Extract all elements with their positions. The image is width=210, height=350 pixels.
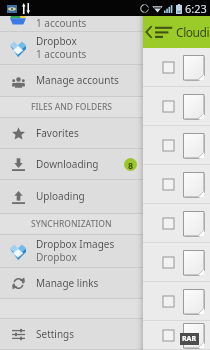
button[interactable]: Select item bbox=[0, 204, 210, 243]
staticText: Manage links bbox=[36, 276, 99, 290]
staticText: Dropbox Images bbox=[36, 237, 115, 251]
button[interactable]: Select item bbox=[0, 126, 210, 165]
button[interactable]: Manage accounts bbox=[0, 65, 143, 97]
staticText: RAR bbox=[182, 334, 197, 344]
button[interactable]: Select item bbox=[163, 296, 174, 307]
staticText: Manage accounts bbox=[36, 73, 119, 87]
button[interactable]: 1 accounts bbox=[0, 16, 143, 32]
button[interactable]: Downloading bbox=[0, 149, 143, 180]
button[interactable]: Select item bbox=[163, 257, 174, 268]
button[interactable]: Select item bbox=[0, 282, 210, 321]
staticText: Uploading bbox=[36, 189, 85, 203]
staticText: Settings bbox=[36, 327, 75, 341]
button[interactable]: Select item bbox=[0, 48, 210, 87]
button[interactable]: Dropbox Images bbox=[0, 235, 143, 268]
button[interactable]: Select item bbox=[163, 330, 174, 341]
button[interactable]: Dropbox bbox=[0, 32, 143, 65]
staticText: 8 bbox=[128, 159, 134, 171]
staticText: Cloudia bbox=[176, 24, 210, 40]
button[interactable]: Select item bbox=[163, 101, 174, 112]
staticText: 1 accounts bbox=[36, 47, 87, 61]
staticText: Dropbox bbox=[36, 250, 77, 264]
button[interactable]: Uploading bbox=[0, 180, 143, 214]
button[interactable]: Select item bbox=[163, 140, 174, 151]
button[interactable]: Select item bbox=[0, 87, 210, 126]
staticText: SYNCHRONIZATION bbox=[31, 218, 112, 230]
button[interactable]: Manage links bbox=[0, 268, 143, 299]
button[interactable]: Settings bbox=[0, 319, 143, 350]
button[interactable]: Open navigation drawer bbox=[143, 16, 176, 48]
button[interactable]: Select item bbox=[0, 243, 210, 282]
staticText: FILES AND FOLDERS bbox=[31, 101, 112, 113]
button[interactable]: Select item bbox=[163, 218, 174, 229]
staticText: 6:23 bbox=[185, 1, 207, 16]
button[interactable]: Favorites bbox=[0, 118, 143, 149]
button[interactable]: Select item bbox=[163, 179, 174, 190]
staticText: Downloading bbox=[36, 157, 99, 171]
button[interactable]: Select item bbox=[0, 321, 210, 350]
button[interactable]: Select item bbox=[0, 165, 210, 204]
staticText: Favorites bbox=[36, 126, 79, 140]
staticText: Dropbox bbox=[36, 34, 77, 48]
button[interactable]: Select item bbox=[163, 62, 174, 73]
staticText: 1 accounts bbox=[36, 16, 87, 30]
